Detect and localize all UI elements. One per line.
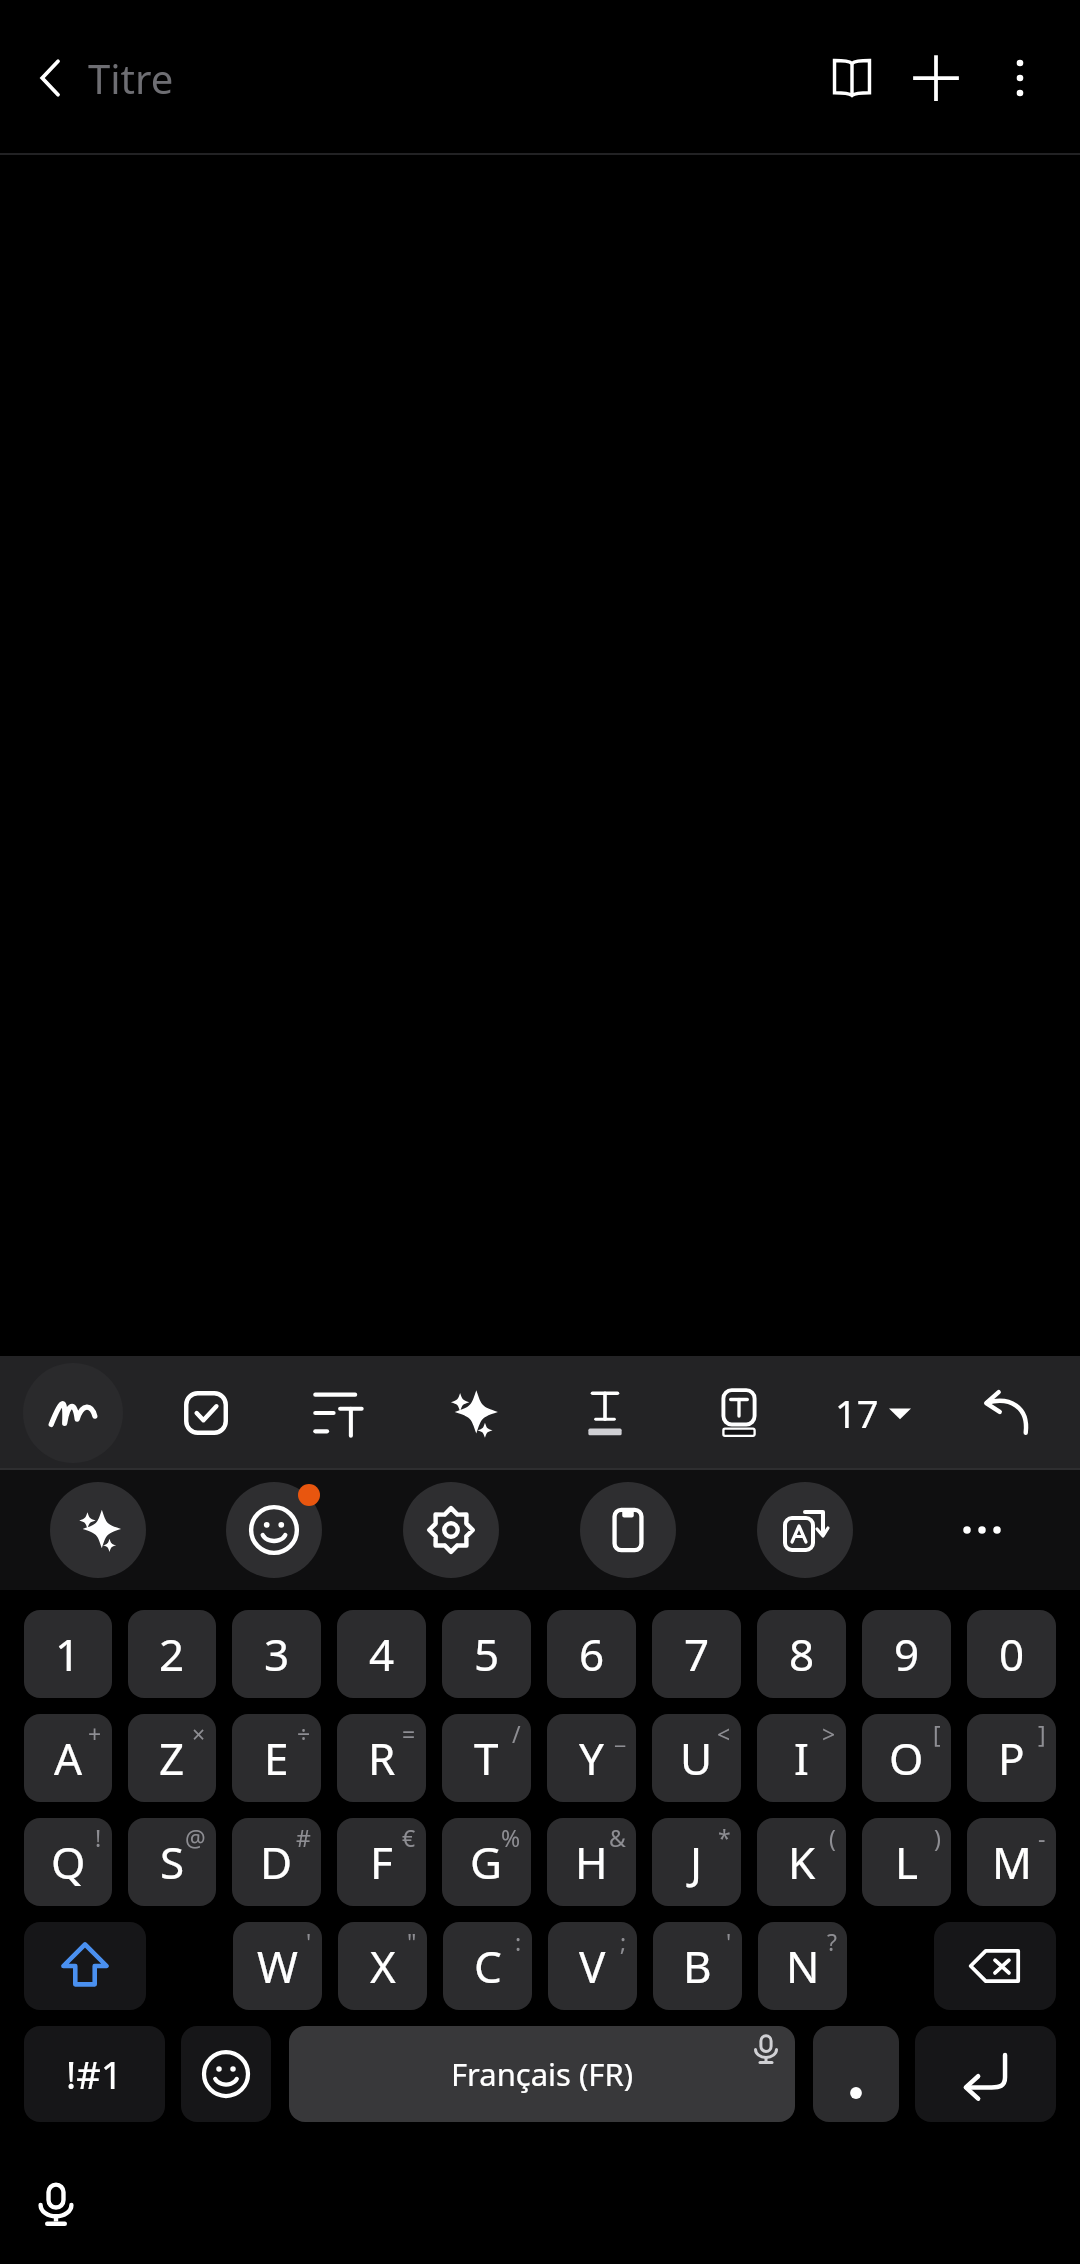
staticText: 1: [55, 1624, 81, 1684]
staticText: Titre: [88, 51, 174, 105]
button[interactable]: L: [862, 1818, 951, 1906]
button[interactable]: G: [442, 1818, 531, 1906]
button[interactable]: Text box: [672, 1356, 806, 1470]
button[interactable]: J: [652, 1818, 741, 1906]
staticText: !: [95, 1822, 102, 1853]
button[interactable]: D: [232, 1818, 321, 1906]
button[interactable]: Enter: [915, 2026, 1056, 2122]
button[interactable]: 8: [757, 1610, 846, 1698]
button[interactable]: C: [443, 1922, 532, 2010]
staticText: N: [786, 1936, 820, 1996]
button[interactable]: Read mode: [810, 36, 894, 120]
button[interactable]: Settings: [362, 1470, 539, 1590]
staticText: E: [264, 1728, 289, 1788]
staticText: O: [889, 1728, 924, 1788]
button[interactable]: [813, 2026, 899, 2122]
staticText: T: [474, 1728, 499, 1788]
button[interactable]: M: [967, 1818, 1056, 1906]
staticText: 17: [835, 1387, 879, 1439]
button[interactable]: O: [862, 1714, 951, 1802]
button[interactable]: N: [758, 1922, 847, 2010]
staticText: K: [788, 1832, 816, 1892]
staticText: (: [829, 1822, 836, 1853]
button[interactable]: Handwriting: [6, 1356, 139, 1470]
button[interactable]: F: [337, 1818, 426, 1906]
button[interactable]: Français (FR): [289, 2026, 795, 2122]
staticText: ÷: [297, 1718, 311, 1749]
button[interactable]: U: [652, 1714, 741, 1802]
button[interactable]: Backspace: [934, 1922, 1056, 2010]
staticText: M: [992, 1832, 1032, 1892]
staticText: /: [512, 1718, 521, 1749]
button[interactable]: Text format: [538, 1356, 672, 1470]
button[interactable]: Undo: [940, 1356, 1074, 1470]
staticText: V: [579, 1936, 606, 1996]
staticText: Y: [579, 1728, 604, 1788]
staticText: +: [88, 1718, 102, 1749]
button[interactable]: V: [548, 1922, 637, 2010]
button[interactable]: 17: [806, 1356, 940, 1470]
button[interactable]: 4: [337, 1610, 426, 1698]
button[interactable]: Checklist: [139, 1356, 272, 1470]
staticText: ': [726, 1926, 732, 1957]
button[interactable]: Paragraph style: [272, 1356, 405, 1470]
staticText: >: [822, 1718, 836, 1749]
button[interactable]: B: [653, 1922, 742, 2010]
button[interactable]: H: [547, 1818, 636, 1906]
button[interactable]: More: [893, 1470, 1070, 1590]
staticText: ;: [620, 1926, 627, 1957]
staticText: P: [998, 1728, 1025, 1788]
button[interactable]: 3: [232, 1610, 321, 1698]
button[interactable]: P: [967, 1714, 1056, 1802]
button[interactable]: 2: [128, 1610, 216, 1698]
button[interactable]: 5: [442, 1610, 531, 1698]
staticText: R: [368, 1728, 396, 1788]
staticText: ": [407, 1926, 417, 1957]
staticText: A: [54, 1728, 83, 1788]
staticText: W: [257, 1936, 298, 1996]
button[interactable]: I: [757, 1714, 846, 1802]
button[interactable]: 9: [862, 1610, 951, 1698]
button[interactable]: Voice input: [14, 2162, 98, 2246]
button[interactable]: Add: [894, 36, 978, 120]
button[interactable]: E: [232, 1714, 321, 1802]
staticText: Q: [51, 1832, 86, 1892]
staticText: ]: [1038, 1718, 1046, 1749]
staticText: 6: [579, 1624, 605, 1684]
button[interactable]: 1: [24, 1610, 112, 1698]
staticText: :: [515, 1926, 522, 1957]
button[interactable]: Back: [14, 41, 88, 115]
button[interactable]: 6: [547, 1610, 636, 1698]
button[interactable]: X: [338, 1922, 427, 2010]
button[interactable]: Shift: [24, 1922, 146, 2010]
button[interactable]: K: [757, 1818, 846, 1906]
button[interactable]: Q: [24, 1818, 112, 1906]
button[interactable]: W: [233, 1922, 322, 2010]
button[interactable]: Emoji: [181, 2026, 271, 2122]
button[interactable]: Y: [547, 1714, 636, 1802]
button[interactable]: Clipboard: [539, 1470, 716, 1590]
staticText: -: [1038, 1822, 1046, 1853]
staticText: 5: [474, 1624, 500, 1684]
button[interactable]: !#1: [24, 2026, 165, 2122]
button[interactable]: Translate: [716, 1470, 893, 1590]
staticText: €: [402, 1822, 416, 1853]
staticText: H: [575, 1832, 608, 1892]
button[interactable]: Emoji: [186, 1470, 362, 1590]
staticText: D: [260, 1832, 293, 1892]
button[interactable]: A: [24, 1714, 112, 1802]
button[interactable]: 0: [967, 1610, 1056, 1698]
button[interactable]: T: [442, 1714, 531, 1802]
button[interactable]: AI assist: [405, 1356, 538, 1470]
staticText: 0: [999, 1624, 1025, 1684]
button[interactable]: R: [337, 1714, 426, 1802]
button[interactable]: 7: [652, 1610, 741, 1698]
button[interactable]: More options: [978, 36, 1062, 120]
staticText: 9: [894, 1624, 920, 1684]
staticText: <: [717, 1718, 731, 1749]
button[interactable]: Z: [128, 1714, 216, 1802]
staticText: &: [609, 1822, 626, 1853]
staticText: U: [680, 1728, 713, 1788]
button[interactable]: AI assist: [10, 1470, 186, 1590]
button[interactable]: S: [128, 1818, 216, 1906]
